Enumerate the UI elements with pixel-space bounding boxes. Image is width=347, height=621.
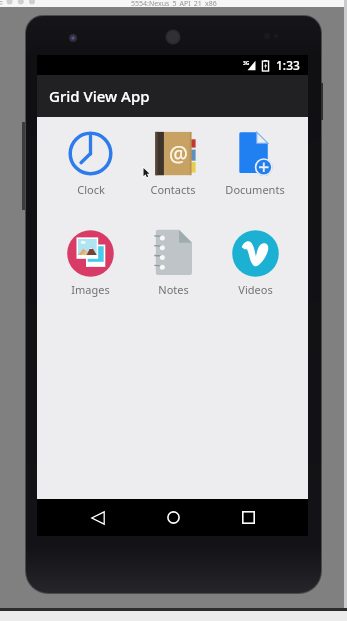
staticText: Documents: [225, 182, 285, 197]
button[interactable]: Back: [78, 499, 118, 536]
staticText: 3G: [243, 60, 250, 67]
button[interactable]: Notes: [132, 230, 214, 297]
button[interactable]: Documents: [214, 130, 296, 197]
staticText: Notes: [158, 282, 189, 297]
staticText: Grid View App: [49, 86, 150, 106]
staticText: Videos: [238, 282, 273, 297]
staticText: @: [169, 140, 188, 169]
button[interactable]: Images: [49, 230, 132, 297]
staticText: Clock: [77, 182, 105, 197]
staticText: 1:33: [276, 57, 300, 73]
button[interactable]: Home: [153, 499, 193, 536]
button[interactable]: Videos: [214, 230, 296, 297]
button[interactable]: @: [132, 130, 214, 197]
staticText: Contacts: [150, 182, 196, 197]
button[interactable]: Recent apps: [228, 499, 268, 536]
staticText: Images: [71, 282, 110, 297]
button[interactable]: Clock: [49, 130, 132, 197]
staticText: 5554:Nexus_5_API_21_x86: [131, 0, 217, 6]
